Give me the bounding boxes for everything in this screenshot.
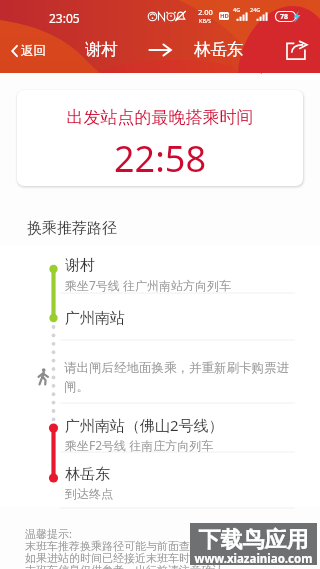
- staticText: 4G: [233, 6, 241, 13]
- staticText: 22:58: [17, 134, 303, 183]
- staticText: 出发站点的最晚搭乘时间: [17, 107, 303, 128]
- staticText: www.xiazainiao.com: [190, 551, 317, 567]
- staticText: 谢村: [85, 39, 118, 60]
- staticText: 谢村: [65, 256, 95, 275]
- staticText: 换乘推荐路径: [27, 219, 117, 238]
- staticText: 乘坐F2号线 往南庄方向列车: [65, 437, 214, 453]
- staticText: 78: [280, 12, 289, 22]
- button[interactable]: Share: [274, 28, 320, 73]
- staticText: 到达终点: [65, 486, 113, 501]
- staticText: 林岳东: [65, 465, 110, 484]
- staticText: 下载鸟应用: [190, 526, 317, 554]
- staticText: 广州南站（佛山2号线）: [65, 415, 224, 435]
- staticText: 23:05: [49, 10, 80, 26]
- staticText: 24G: [250, 6, 261, 13]
- staticText: 请出闸后经地面换乘，并重新刷卡购票进闸。: [64, 360, 292, 395]
- staticText: 广州南站: [65, 309, 125, 328]
- staticText: HD: [220, 12, 229, 20]
- staticText: 乘坐7号线 往广州南站方向列车: [65, 277, 231, 293]
- staticText: 林岳东: [194, 39, 244, 60]
- staticText: 2.00: [198, 7, 213, 17]
- staticText: 返回: [21, 43, 46, 59]
- other: To: [149, 42, 172, 58]
- staticText: 温馨提示: 末班车推荐换乘路径可能与前面查询结果不一致。 如果进站的时间已经接近…: [25, 526, 297, 569]
- button[interactable]: 返回: [0, 34, 56, 68]
- staticText: KB/S: [199, 17, 212, 24]
